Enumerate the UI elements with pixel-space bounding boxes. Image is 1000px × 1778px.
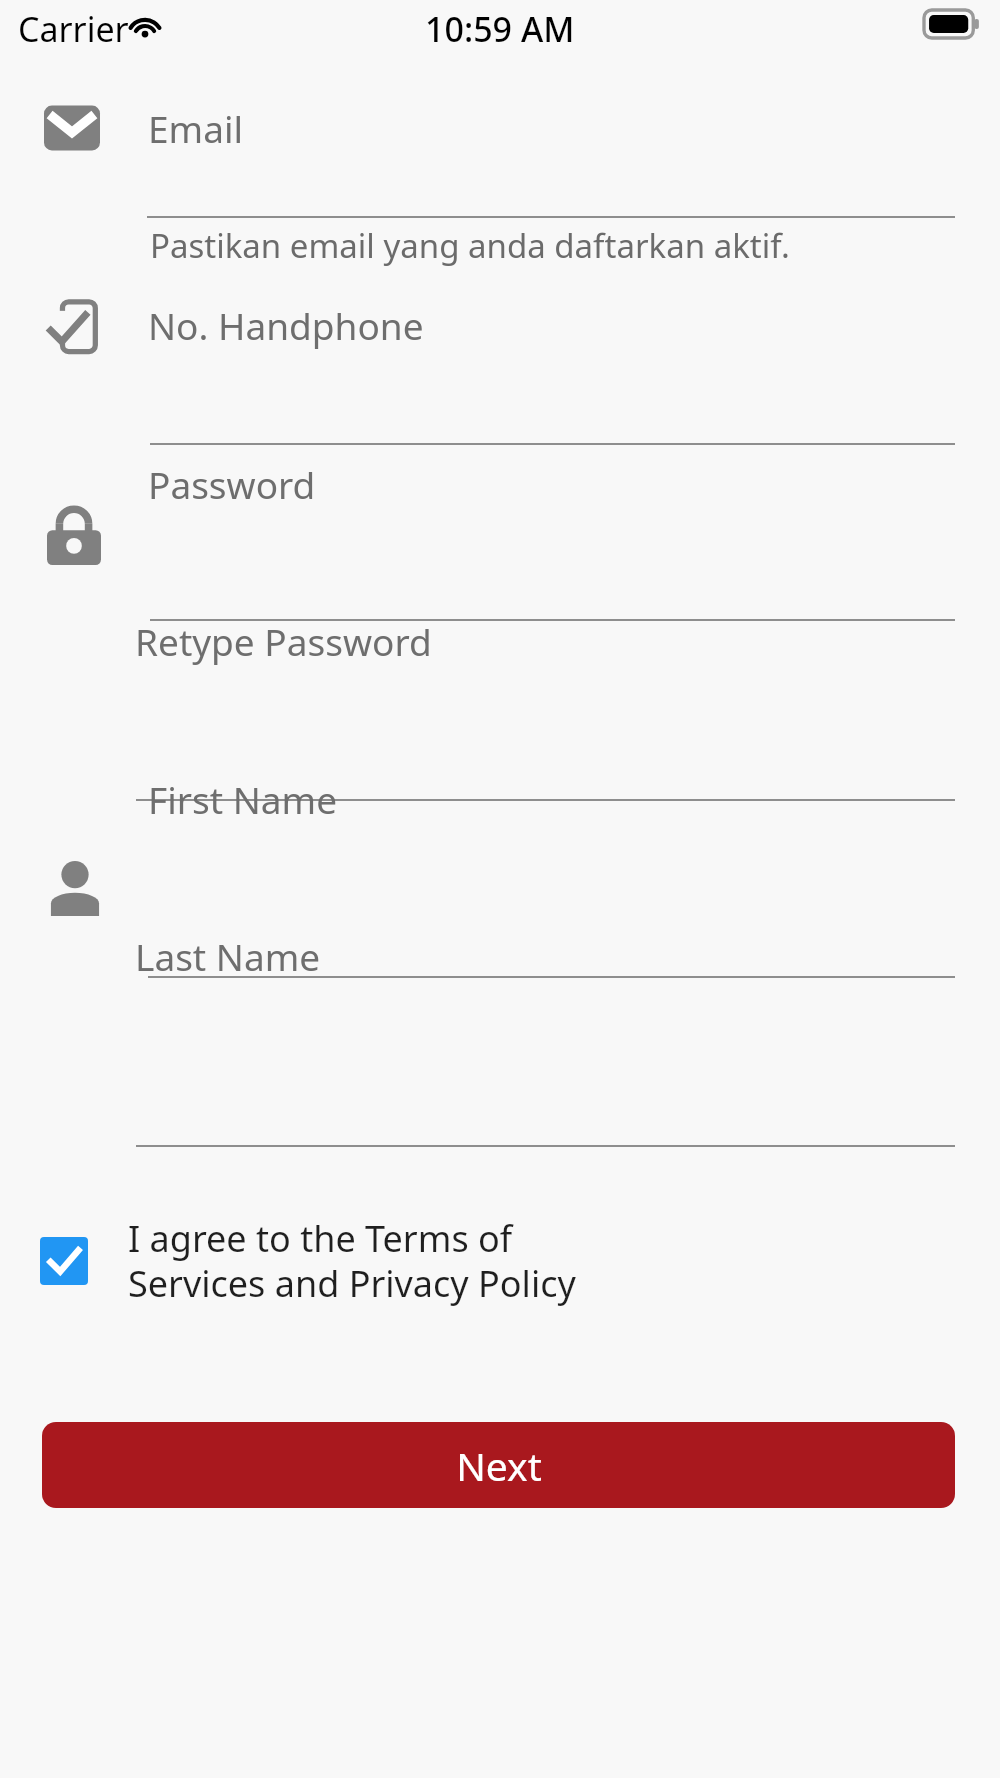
other: Password xyxy=(47,503,101,565)
button[interactable]: Next xyxy=(42,1422,955,1508)
staticText: Password xyxy=(148,459,316,509)
staticText: Pastikan email yang anda daftarkan aktif… xyxy=(150,223,790,268)
staticText: Carrier xyxy=(18,6,129,52)
staticText: Retype Password xyxy=(135,616,432,666)
staticText: Email xyxy=(148,103,244,153)
staticText: I agree to the Terms of Services and Pri… xyxy=(128,1214,576,1308)
staticText: Next xyxy=(456,1439,542,1492)
other: Email xyxy=(44,100,100,156)
other: Phone number xyxy=(42,292,104,354)
staticText: No. Handphone xyxy=(148,300,424,350)
staticText: 10:59 AM xyxy=(425,6,575,52)
other: First name xyxy=(46,858,104,916)
staticText: First Name xyxy=(148,774,338,824)
button[interactable]: I agree to the Terms of Services and Pri… xyxy=(36,1206,636,1316)
staticText: Last Name xyxy=(135,931,321,981)
